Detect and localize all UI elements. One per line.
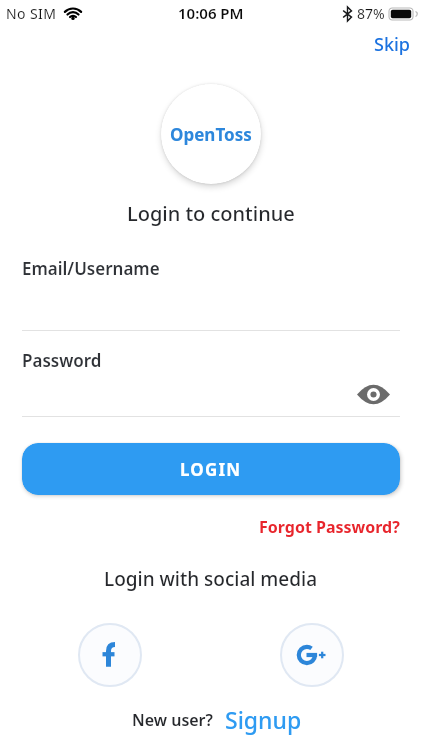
staticText: No SIM: [6, 4, 57, 23]
staticText: Email/Username: [22, 257, 160, 280]
staticText: New user?: [132, 709, 213, 731]
staticText: 87%: [357, 4, 385, 23]
button[interactable]: Skip: [374, 32, 410, 57]
button[interactable]: [357, 386, 390, 403]
staticText: Forgot Password?: [259, 516, 400, 538]
staticText: Signup: [225, 704, 302, 735]
button[interactable]: [280, 623, 344, 687]
staticText: LOGIN: [180, 458, 242, 481]
button[interactable]: Signup: [225, 704, 302, 735]
staticText: Login with social media: [104, 566, 318, 592]
staticText: OpenToss: [170, 123, 252, 146]
button[interactable]: LOGIN: [22, 443, 400, 495]
staticText: Skip: [374, 32, 410, 57]
button[interactable]: Forgot Password?: [259, 516, 400, 538]
staticText: Password: [22, 349, 102, 372]
staticText: Login to continue: [127, 200, 295, 227]
button[interactable]: [78, 623, 142, 687]
staticText: 10:06 PM: [178, 3, 244, 23]
